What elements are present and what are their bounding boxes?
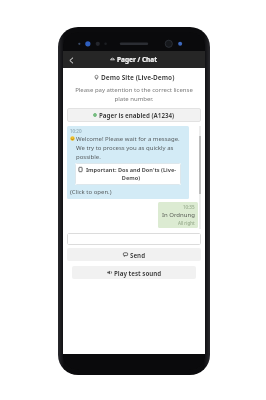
staticText: Pager is enabled (A1234) — [99, 111, 175, 119]
staticText: Please pay attention to the correct lice… — [73, 86, 195, 102]
staticText: (Click to open.) — [70, 188, 112, 196]
staticText: In Ordnung — [162, 211, 195, 219]
button[interactable]: Important: Dos and Don'ts (Live-Demo) — [75, 163, 181, 185]
button[interactable]: Pager is enabled (A1234) — [67, 108, 201, 122]
button[interactable]: Message input — [67, 233, 201, 245]
staticText: 10:35 — [183, 204, 195, 210]
button[interactable]: Send — [67, 248, 201, 261]
staticText: Pager / Chat — [117, 55, 158, 64]
staticText: Important: Dos and Don'ts (Live-Demo) — [84, 166, 178, 182]
staticText: Welcome! Please wait for a message. We t… — [76, 135, 186, 160]
staticText: All right — [178, 220, 195, 226]
staticText: Play test sound — [114, 269, 162, 277]
button[interactable]: Back — [63, 52, 79, 68]
staticText: 10:20 — [70, 128, 82, 134]
staticText: Demo Site (Live-Demo) — [101, 73, 175, 82]
staticText: Send — [130, 251, 146, 259]
button[interactable]: Play test sound — [72, 266, 196, 279]
